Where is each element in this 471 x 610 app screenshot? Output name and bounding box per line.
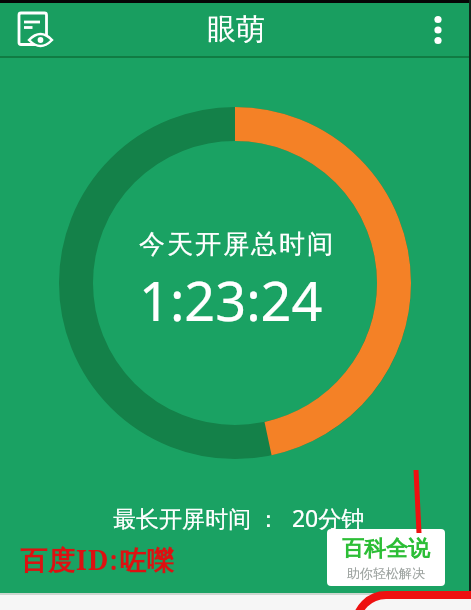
staticText: 1:23:24 xyxy=(139,263,323,337)
button[interactable]: 百科全说 xyxy=(327,529,445,586)
button[interactable] xyxy=(6,7,64,53)
button[interactable] xyxy=(415,6,459,54)
staticText: 百度ID:咗嚛 xyxy=(20,541,175,578)
staticText: 助你轻松解决 xyxy=(347,565,425,581)
staticText: 最长开屏时间 ： 20分钟 xyxy=(113,502,365,533)
staticText: 眼萌 xyxy=(207,11,265,48)
staticText: 今天开屏总时间 xyxy=(138,228,334,261)
staticText: 百科全说 xyxy=(342,535,430,563)
